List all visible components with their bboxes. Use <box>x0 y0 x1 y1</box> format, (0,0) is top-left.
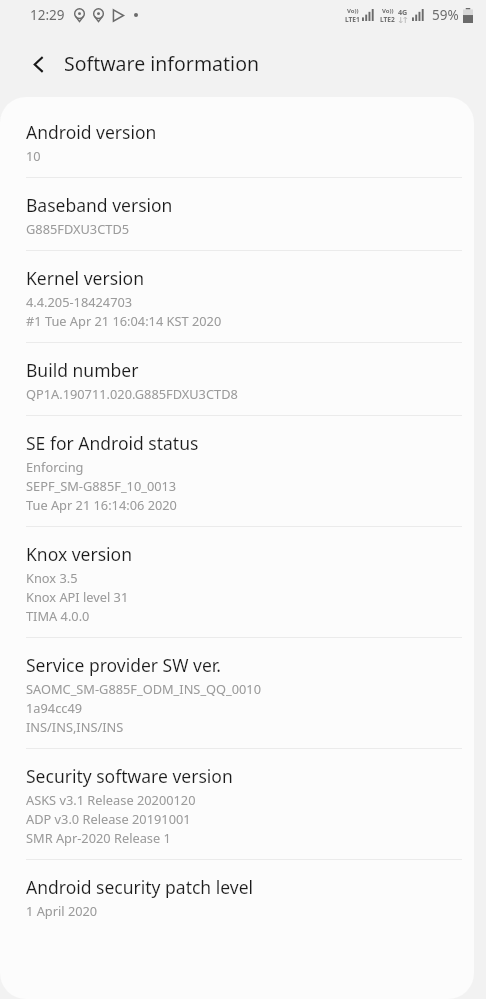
staticText: ASKS v3.1 Release 20200120 <box>26 791 196 808</box>
staticText: 4G <box>398 7 408 17</box>
staticText: ADP v3.0 Release 20191001 <box>26 810 191 827</box>
staticText: 12:29 <box>30 6 65 24</box>
staticText: SE for Android status <box>26 431 199 455</box>
staticText: Knox version <box>26 542 132 566</box>
staticText: SEPF_SM-G885F_10_0013 <box>26 477 177 494</box>
staticText: Enforcing <box>26 458 84 475</box>
staticText: Build number <box>26 358 139 382</box>
button[interactable]: Back <box>17 43 59 85</box>
staticText: LTE2 <box>380 15 395 24</box>
staticText: Android version <box>26 120 157 144</box>
button[interactable]: Android security patch level <box>0 860 474 932</box>
button[interactable]: Build number <box>0 343 474 416</box>
staticText: QP1A.190711.020.G885FDXU3CTD8 <box>26 385 238 402</box>
staticText: 10 <box>26 147 41 164</box>
button[interactable]: Kernel version <box>0 251 474 343</box>
button[interactable]: Baseband version <box>0 178 474 251</box>
staticText: TIMA 4.0.0 <box>26 607 90 624</box>
staticText: INS/INS,INS/INS <box>26 718 124 735</box>
button[interactable]: Knox version <box>0 527 474 638</box>
staticText: Vo)) <box>347 7 359 15</box>
staticText: Android security patch level <box>26 875 254 899</box>
staticText: G885FDXU3CTD5 <box>26 220 130 237</box>
staticText: 4.4.205-18424703 <box>26 293 133 310</box>
staticText: Service provider SW ver. <box>26 653 221 677</box>
button[interactable]: Android version <box>0 105 474 178</box>
button[interactable]: Security software version <box>0 749 474 860</box>
staticText: Security software version <box>26 764 233 788</box>
staticText: Tue Apr 21 16:14:06 2020 <box>26 496 177 513</box>
staticText: Software information <box>64 50 259 77</box>
staticText: Vo)) <box>382 7 394 15</box>
button[interactable]: SE for Android status <box>0 416 474 527</box>
staticText: SAOMC_SM-G885F_ODM_INS_QQ_0010 <box>26 680 262 697</box>
staticText: 1a94cc49 <box>26 699 83 716</box>
button[interactable]: Service provider SW ver. <box>0 638 474 749</box>
staticText: Knox API level 31 <box>26 588 129 605</box>
staticText: 1 April 2020 <box>26 902 98 919</box>
staticText: LTE1 <box>345 15 360 24</box>
staticText: Kernel version <box>26 266 144 290</box>
staticText: SMR Apr-2020 Release 1 <box>26 829 171 846</box>
staticText: 59% <box>432 6 459 24</box>
staticText: #1 Tue Apr 21 16:04:14 KST 2020 <box>26 312 222 329</box>
staticText: Knox 3.5 <box>26 569 78 586</box>
staticText: Baseband version <box>26 193 173 217</box>
